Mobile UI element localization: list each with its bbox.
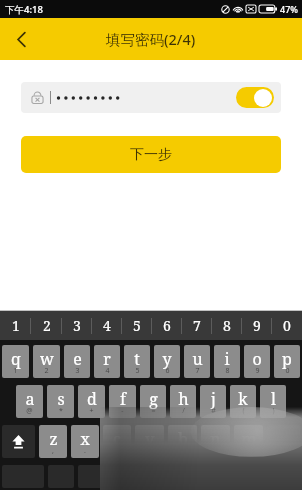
button[interactable]: m	[234, 425, 263, 458]
button[interactable]: e	[64, 345, 90, 378]
button[interactable]: o	[244, 345, 270, 378]
staticText: 3	[75, 366, 80, 376]
button[interactable]: n	[201, 425, 230, 458]
staticText: *	[59, 406, 63, 416]
button[interactable]: 5	[122, 311, 152, 340]
staticText: -	[116, 446, 119, 456]
button[interactable]: Delete	[267, 425, 300, 458]
button[interactable]: 4	[92, 311, 122, 340]
button[interactable]: p	[274, 345, 300, 378]
staticText: +	[89, 406, 94, 416]
button[interactable]: 8	[212, 311, 242, 340]
button[interactable]: a	[16, 385, 43, 418]
staticText: 2	[44, 366, 49, 376]
staticText: 8	[223, 316, 231, 335]
button[interactable]: b	[168, 425, 197, 458]
button[interactable]: Period	[228, 465, 254, 488]
staticText: h	[178, 388, 189, 410]
staticText: 9	[255, 366, 260, 376]
staticText: p	[282, 348, 292, 370]
button[interactable]: 1	[0, 311, 31, 340]
button[interactable]: h	[170, 385, 196, 418]
button[interactable]: Shift	[2, 425, 35, 458]
button[interactable]: Space	[78, 465, 224, 488]
staticText: j	[211, 388, 216, 410]
button[interactable]: k	[230, 385, 256, 418]
staticText: 7	[195, 366, 200, 376]
staticText: 1	[13, 366, 18, 376]
staticText: o	[252, 348, 262, 370]
staticText: a	[25, 388, 35, 410]
button[interactable]: t	[124, 345, 150, 378]
staticText: 0	[283, 316, 291, 335]
button[interactable]: y	[154, 345, 180, 378]
staticText: 下午4:18	[5, 3, 43, 16]
button[interactable]: c	[103, 425, 131, 458]
staticText: !	[182, 446, 184, 456]
button[interactable]: 2	[31, 311, 62, 340]
button[interactable]: r	[94, 345, 120, 378]
staticText: #	[211, 406, 216, 416]
staticText: b	[178, 428, 188, 450]
staticText: 5	[133, 316, 141, 335]
button[interactable]: g	[140, 385, 166, 418]
staticText: 9	[253, 316, 261, 335]
staticText: 8	[225, 366, 230, 376]
button[interactable]: l	[260, 385, 286, 418]
staticText: i	[224, 348, 230, 370]
button[interactable]: 7	[182, 311, 212, 340]
staticText: w	[40, 348, 54, 370]
button[interactable]: f	[109, 385, 136, 418]
staticText: c	[113, 428, 121, 450]
staticText: 4	[103, 316, 111, 335]
staticText: 6	[163, 316, 171, 335]
button[interactable]: Enter	[258, 465, 300, 488]
button[interactable]: Show password	[21, 82, 281, 113]
button[interactable]: u	[184, 345, 210, 378]
button[interactable]: i	[214, 345, 240, 378]
staticText: n	[210, 428, 221, 450]
button[interactable]: 9	[242, 311, 272, 340]
staticText: 47%	[280, 3, 298, 15]
button[interactable]: 0	[272, 311, 302, 340]
staticText: s	[57, 388, 65, 410]
staticText: d	[87, 388, 97, 410]
staticText: x	[80, 428, 90, 450]
staticText: 1	[12, 316, 20, 335]
staticText: =	[151, 406, 156, 416]
staticText: f	[120, 388, 126, 410]
staticText: l	[271, 388, 276, 410]
button[interactable]: q	[2, 345, 29, 378]
staticText: 6	[165, 366, 170, 376]
button[interactable]: Back	[0, 18, 42, 60]
button[interactable]: z	[39, 425, 67, 458]
button[interactable]: 3	[62, 311, 92, 340]
button[interactable]: v	[135, 425, 164, 458]
staticText: t	[134, 348, 140, 370]
staticText: 填写密码(2/4)	[106, 29, 196, 49]
staticText: /	[182, 406, 185, 416]
button[interactable]: 下一步	[21, 136, 281, 173]
button[interactable]: d	[78, 385, 105, 418]
button[interactable]: x	[71, 425, 99, 458]
staticText: 2	[43, 316, 51, 335]
staticText: k	[238, 388, 248, 410]
button[interactable]: w	[33, 345, 60, 378]
staticText: 7	[193, 316, 201, 335]
staticText: 下一步	[130, 146, 172, 164]
staticText: -	[121, 406, 124, 416]
staticText: :	[149, 446, 151, 456]
staticText: v	[145, 428, 155, 450]
button[interactable]: s	[47, 385, 74, 418]
button[interactable]: Show password	[236, 87, 274, 108]
staticText: .	[84, 446, 86, 456]
staticText: (	[242, 406, 245, 416]
button[interactable]: j	[200, 385, 226, 418]
button[interactable]: 6	[152, 311, 182, 340]
staticText: e	[73, 348, 82, 370]
staticText: r	[103, 348, 111, 370]
staticText: u	[192, 348, 203, 370]
staticText: )	[272, 406, 275, 416]
